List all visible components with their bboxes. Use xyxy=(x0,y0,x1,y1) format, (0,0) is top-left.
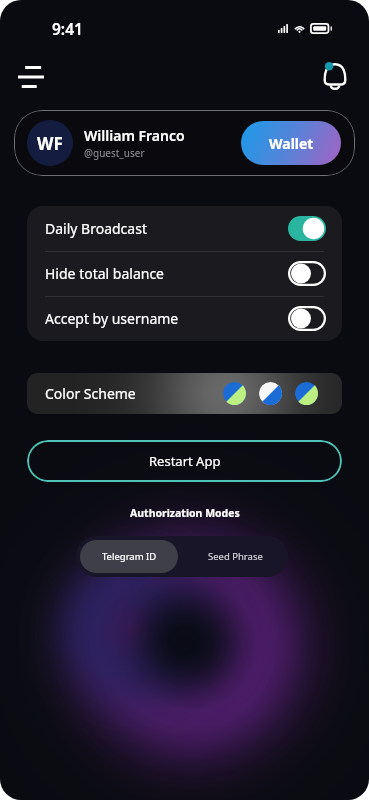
button[interactable]: Color Scheme xyxy=(27,373,342,414)
button[interactable]: Telegram ID xyxy=(80,540,178,573)
staticText: @guest_user xyxy=(84,146,145,160)
staticText: Accept by username xyxy=(45,309,288,328)
staticText: Authorization Modes xyxy=(130,506,240,520)
staticText: Restart App xyxy=(149,452,221,470)
button[interactable]: Seed Phrase xyxy=(182,536,288,577)
staticText: Daily Broadcast xyxy=(45,219,288,238)
staticText: Hide total balance xyxy=(45,264,288,283)
button[interactable]: Hide total balance xyxy=(27,251,342,296)
staticText: WF xyxy=(37,132,63,155)
button[interactable]: Color option xyxy=(295,382,318,405)
staticText: 9:41 xyxy=(52,18,83,39)
button[interactable]: Wallet xyxy=(241,121,341,165)
button[interactable]: Daily Broadcast xyxy=(27,206,342,251)
button[interactable]: Color option xyxy=(223,382,246,405)
staticText: Seed Phrase xyxy=(208,550,263,563)
staticText: Wallet xyxy=(269,134,314,153)
button[interactable]: Menu xyxy=(10,56,52,98)
staticText: William Franco xyxy=(84,126,185,145)
button[interactable]: Accept by username xyxy=(27,296,342,341)
button[interactable]: WF xyxy=(14,110,355,176)
staticText: Telegram ID xyxy=(102,550,157,563)
button[interactable]: Notifications xyxy=(315,57,355,97)
button[interactable]: Restart App xyxy=(27,440,342,482)
button[interactable]: Color option xyxy=(259,382,282,405)
staticText: Color Scheme xyxy=(45,384,223,403)
